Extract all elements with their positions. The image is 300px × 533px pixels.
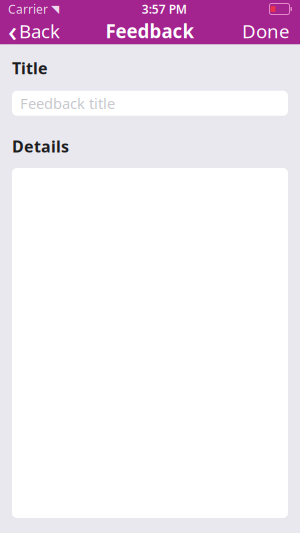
staticText: Back bbox=[19, 19, 60, 43]
button[interactable]: ‹ bbox=[0, 18, 68, 44]
button[interactable]: Done bbox=[232, 18, 300, 44]
button[interactable]: Feedback title bbox=[12, 91, 288, 116]
staticText: Carrier bbox=[8, 1, 48, 17]
staticText: ‹ bbox=[8, 12, 17, 50]
staticText: 3:57 PM bbox=[142, 1, 187, 17]
staticText: Title bbox=[12, 57, 48, 79]
staticText: Feedback title bbox=[20, 93, 115, 113]
staticText: ◥ bbox=[51, 3, 59, 15]
staticText: Done bbox=[242, 19, 290, 43]
staticText: Details bbox=[12, 136, 69, 157]
staticText: Feedback bbox=[105, 19, 194, 43]
